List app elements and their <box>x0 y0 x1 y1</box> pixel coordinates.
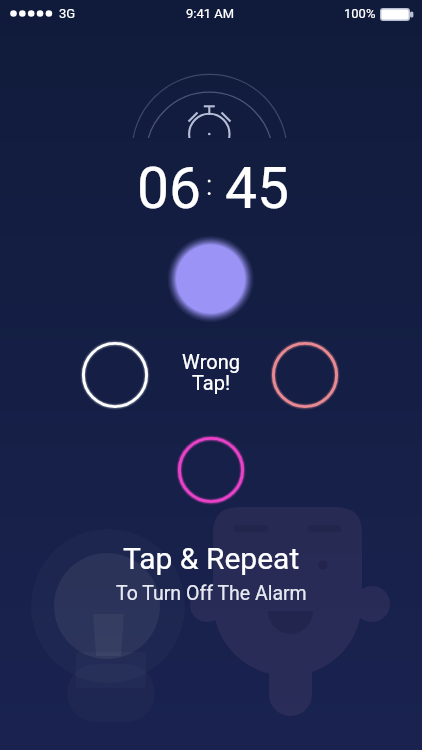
staticText: 06 <box>137 155 202 222</box>
button[interactable]: Red circle <box>265 335 345 415</box>
button[interactable]: Pink circle <box>171 430 251 510</box>
staticText: 45 <box>225 155 290 222</box>
staticText: 3G <box>59 6 76 21</box>
staticText: 100% <box>344 6 376 21</box>
button[interactable]: Purple tap target <box>164 233 256 325</box>
staticText: 9:41 AM <box>186 6 235 21</box>
staticText: To Turn Off The Alarm <box>116 582 307 605</box>
button[interactable]: White circle <box>75 335 155 415</box>
staticText: Tap & Repeat <box>123 541 300 576</box>
staticText: Wrong Tap! <box>131 350 291 395</box>
